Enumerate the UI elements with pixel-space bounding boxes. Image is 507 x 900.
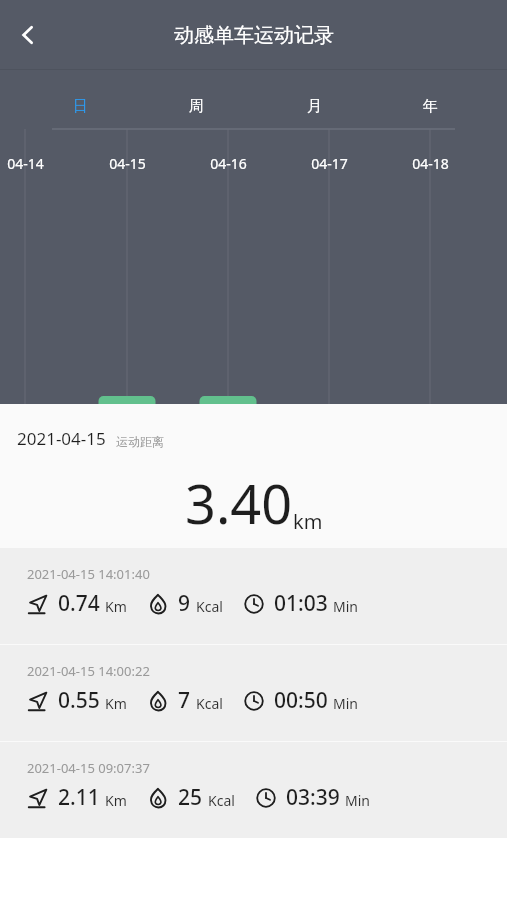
- staticText: km: [293, 508, 323, 535]
- button[interactable]: 2021-04-15 14:00:22: [0, 645, 507, 741]
- button[interactable]: 日: [52, 88, 108, 124]
- staticText: 01:03: [274, 589, 328, 618]
- staticText: 年: [423, 97, 438, 116]
- staticText: Kcal: [196, 694, 223, 713]
- staticText: 00:50: [274, 686, 328, 715]
- staticText: 0.74: [58, 589, 100, 618]
- staticText: 2021-04-15 14:01:40: [27, 565, 150, 583]
- staticText: 2021-04-15 09:07:37: [27, 759, 150, 777]
- staticText: 月: [307, 97, 322, 116]
- staticText: 2.11: [58, 783, 100, 812]
- staticText: 9: [178, 589, 191, 618]
- button[interactable]: 周: [168, 88, 224, 124]
- staticText: Min: [345, 791, 370, 810]
- staticText: 日: [73, 97, 88, 116]
- staticText: 04-16: [210, 154, 247, 173]
- staticText: 2021-04-15: [17, 427, 106, 450]
- staticText: 2021-04-15 14:00:22: [27, 662, 150, 680]
- staticText: 7: [178, 686, 191, 715]
- staticText: Km: [105, 791, 127, 810]
- button[interactable]: Back: [0, 7, 56, 63]
- staticText: 3.40: [185, 466, 293, 540]
- staticText: Min: [333, 597, 358, 616]
- staticText: 0.55: [58, 686, 100, 715]
- staticText: Km: [105, 597, 127, 616]
- staticText: 04-14: [7, 154, 44, 173]
- staticText: 运动距离: [116, 434, 164, 449]
- staticText: Min: [333, 694, 358, 713]
- staticText: Kcal: [196, 597, 223, 616]
- button[interactable]: 2021-04-15 09:07:37: [0, 742, 507, 838]
- button[interactable]: 月: [286, 88, 342, 124]
- staticText: 04-18: [412, 154, 449, 173]
- staticText: 03:39: [286, 783, 340, 812]
- staticText: 25: [178, 783, 203, 812]
- staticText: Km: [105, 694, 127, 713]
- staticText: 04-17: [311, 154, 348, 173]
- staticText: 动感单车运动记录: [174, 23, 334, 48]
- staticText: Kcal: [208, 791, 235, 810]
- staticText: 周: [189, 97, 204, 116]
- button[interactable]: 年: [402, 88, 458, 124]
- staticText: 04-15: [109, 154, 146, 173]
- button[interactable]: 2021-04-15 14:01:40: [0, 548, 507, 644]
